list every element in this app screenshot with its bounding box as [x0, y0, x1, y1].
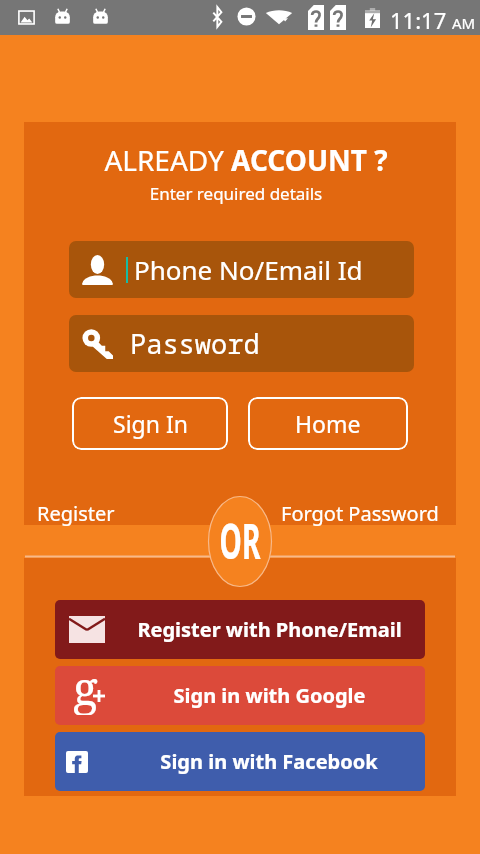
staticText: Sign in with Google [173, 682, 366, 709]
staticText: Sign In [113, 408, 188, 439]
staticText: Enter required details [20, 182, 452, 205]
button[interactable]: Sign In [72, 397, 228, 450]
button[interactable]: Register [37, 500, 115, 527]
button[interactable]: Phone No/Email Id [69, 241, 414, 298]
button[interactable]: Home [248, 397, 408, 450]
button[interactable]: Sign in with Google [55, 666, 425, 725]
staticText: OR [204, 508, 276, 574]
staticText: g [73, 666, 98, 715]
button[interactable]: Password [69, 315, 414, 372]
staticText: Sign in with Facebook [160, 748, 378, 775]
staticText: ALREADY ACCOUNT ? [30, 141, 462, 179]
button[interactable]: Forgot Password [281, 500, 439, 527]
staticText: Home [295, 408, 361, 439]
staticText: Register with Phone/Email [137, 616, 402, 643]
button[interactable]: Register with Phone/Email [55, 600, 425, 659]
staticText: Password [130, 325, 260, 362]
button[interactable]: Sign in with Facebook [55, 732, 425, 791]
staticText: Phone No/Email Id [134, 252, 363, 287]
staticText: 11:17 AM [390, 5, 476, 35]
